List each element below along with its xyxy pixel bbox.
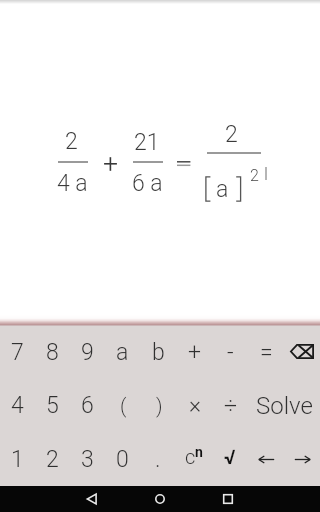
button[interactable]: 7 <box>0 325 35 379</box>
button[interactable]: b <box>140 325 176 379</box>
button[interactable]: 2 <box>35 433 70 486</box>
staticText: 9 <box>81 339 94 366</box>
staticText: Solve <box>256 392 313 420</box>
button[interactable] <box>284 433 320 486</box>
staticText: ÷ <box>224 392 238 419</box>
button[interactable]: = <box>248 325 284 379</box>
button[interactable]: 4 <box>0 379 35 432</box>
button[interactable] <box>284 325 320 379</box>
button[interactable]: + <box>176 325 212 379</box>
staticText: ( <box>120 394 127 417</box>
staticText: b <box>152 339 165 366</box>
staticText: 1 <box>11 446 24 473</box>
staticText: 6 a <box>132 170 163 197</box>
button[interactable]: × <box>177 379 213 432</box>
staticText: + <box>188 339 201 366</box>
button[interactable]: Solve <box>249 379 320 432</box>
button[interactable]: a <box>105 325 140 379</box>
staticText: 3 <box>81 446 94 473</box>
button[interactable]: . <box>140 433 176 486</box>
button[interactable]: 8 <box>35 325 70 379</box>
staticText: n <box>195 444 203 460</box>
staticText: c <box>185 445 196 468</box>
staticText: = <box>260 339 273 366</box>
staticText: 2 <box>250 166 259 185</box>
staticText: ) <box>156 394 163 417</box>
button[interactable] <box>211 486 245 512</box>
button[interactable] <box>248 433 284 486</box>
staticText: 2 <box>46 446 59 473</box>
staticText: - <box>227 339 234 366</box>
button[interactable]: ) <box>141 379 177 432</box>
button[interactable]: 0 <box>105 433 140 486</box>
button[interactable] <box>143 486 177 512</box>
button[interactable]: 1 <box>0 433 35 486</box>
staticText: 5 <box>46 392 59 419</box>
staticText: 21 <box>134 129 160 156</box>
staticText: × <box>189 392 202 419</box>
staticText: 2 <box>65 128 78 155</box>
staticText: 4 <box>11 392 24 419</box>
staticText: √ <box>224 445 236 468</box>
staticText: a <box>116 339 129 366</box>
button[interactable]: ( <box>105 379 141 432</box>
staticText: 6 <box>81 392 94 419</box>
button[interactable]: 5 <box>35 379 70 432</box>
staticText: 7 <box>11 339 24 366</box>
staticText: 2 <box>225 121 238 148</box>
staticText: 0 <box>116 446 129 473</box>
staticText: 8 <box>46 339 59 366</box>
button[interactable]: ÷ <box>213 379 249 432</box>
button[interactable]: - <box>212 325 248 379</box>
button[interactable]: 6 <box>70 379 105 432</box>
staticText: 4 a <box>57 170 88 197</box>
button[interactable]: c <box>176 433 212 486</box>
staticText: a <box>216 176 229 203</box>
button[interactable]: 9 <box>70 325 105 379</box>
button[interactable]: 3 <box>70 433 105 486</box>
staticText: . <box>155 446 161 473</box>
button[interactable] <box>75 486 109 512</box>
button[interactable]: √ <box>212 433 248 486</box>
